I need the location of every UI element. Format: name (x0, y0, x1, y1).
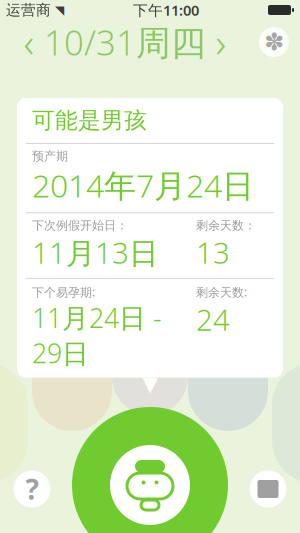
staticText: › (215, 15, 226, 68)
button[interactable]: 前一天 (14, 20, 44, 64)
staticText: ✽ (264, 28, 284, 56)
staticText: ? (25, 470, 38, 508)
staticText: 11月24日 - 29日 (32, 300, 162, 371)
staticText: 10/31周四 (44, 19, 206, 65)
button[interactable]: 设置 (252, 20, 296, 64)
staticText: 24 (196, 300, 230, 339)
staticText: 2014年7月24日 (32, 164, 254, 206)
staticText: 11月13日 (32, 233, 158, 272)
staticText: ‹ (23, 15, 34, 68)
staticText: 预产期 (32, 149, 68, 164)
button[interactable]: 帮助 (8, 465, 56, 513)
staticText: 剩余天数： (196, 218, 256, 233)
button[interactable]: 后一天 (206, 20, 236, 64)
staticText: 可能是男孩 (32, 107, 147, 134)
button[interactable]: 日历 (244, 465, 292, 513)
staticText: 13 (196, 233, 230, 272)
staticText: ▼ (142, 373, 157, 395)
staticText: 下次例假开始日： (32, 218, 128, 233)
button[interactable]: 宝宝 (72, 407, 228, 533)
staticText: 下个易孕期: (32, 284, 95, 300)
staticText: ◥ (51, 3, 64, 17)
button[interactable]: 10/31周四 (44, 20, 206, 64)
staticText: 剩余天数: (196, 284, 247, 300)
staticText: 下午11:00 (133, 0, 199, 20)
staticText: 运营商 (6, 1, 51, 19)
